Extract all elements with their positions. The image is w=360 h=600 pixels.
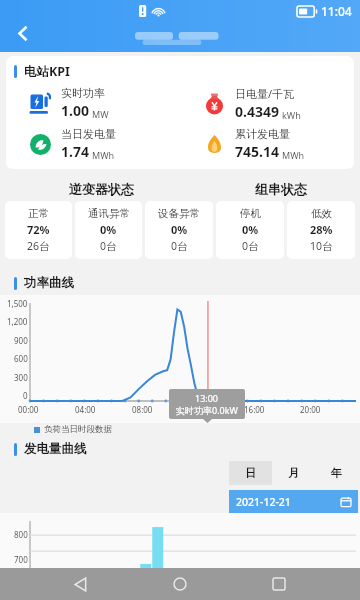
staticText: 1,500 bbox=[7, 298, 28, 309]
staticText: 年 bbox=[331, 466, 342, 480]
staticText: 16:00 bbox=[244, 404, 265, 415]
staticText: 10台 bbox=[310, 239, 333, 253]
staticText: 745.14 bbox=[235, 142, 279, 161]
button[interactable]: 停机 bbox=[216, 201, 284, 259]
staticText: 累计发电量 bbox=[235, 127, 290, 141]
button[interactable]: 累计发电量 bbox=[202, 127, 354, 161]
staticText: 实时功率 bbox=[61, 86, 105, 100]
staticText: 设备异常 bbox=[158, 207, 200, 220]
button[interactable]: Back bbox=[63, 568, 99, 600]
staticText: 负荷当日时段数据 bbox=[44, 424, 112, 435]
staticText: 800 bbox=[14, 529, 28, 540]
staticText: 0台 bbox=[100, 239, 117, 253]
staticText: 0% bbox=[242, 222, 259, 237]
staticText: 日 bbox=[245, 466, 256, 480]
staticText: 72% bbox=[27, 222, 50, 237]
staticText: 900 bbox=[14, 335, 28, 346]
staticText: 0% bbox=[100, 222, 117, 237]
staticText: 26台 bbox=[27, 239, 50, 253]
staticText: 0 bbox=[23, 390, 28, 401]
staticText: kWh bbox=[282, 109, 301, 121]
staticText: 实时功率0.0kW bbox=[176, 404, 238, 416]
staticText: 00:00 bbox=[18, 404, 39, 415]
staticText: 2021-12-21 bbox=[236, 495, 291, 509]
button[interactable]: 年 bbox=[315, 461, 358, 485]
button[interactable]: 日电量/千瓦 bbox=[202, 86, 354, 121]
button[interactable]: 设备异常 bbox=[145, 201, 213, 259]
staticText: 20:00 bbox=[300, 404, 321, 415]
staticText: 0.4349 bbox=[235, 102, 279, 121]
button[interactable]: Recent apps bbox=[261, 568, 297, 600]
staticText: 0台 bbox=[242, 239, 259, 253]
staticText: 11:04 bbox=[321, 3, 352, 19]
staticText: 组串状态 bbox=[255, 181, 307, 197]
staticText: 逆变器状态 bbox=[69, 181, 134, 197]
staticText: 正常 bbox=[28, 207, 49, 220]
staticText: 当日发电量 bbox=[61, 127, 116, 141]
staticText: MWh bbox=[92, 149, 115, 161]
button[interactable]: 实时功率 bbox=[28, 86, 180, 120]
button[interactable]: 通讯异常 bbox=[75, 201, 142, 259]
button[interactable]: 月 bbox=[272, 461, 315, 485]
staticText: 1,200 bbox=[7, 316, 28, 327]
staticText: 0% bbox=[171, 222, 188, 237]
button[interactable]: 正常 bbox=[5, 201, 72, 259]
staticText: 功率曲线 bbox=[24, 275, 74, 291]
staticText: 0台 bbox=[171, 239, 188, 253]
staticText: 700 bbox=[14, 554, 28, 565]
staticText: 300 bbox=[14, 372, 28, 383]
button[interactable]: Back bbox=[6, 16, 40, 50]
button[interactable]: 日 bbox=[229, 461, 272, 485]
staticText: 12:00 bbox=[188, 404, 209, 415]
staticText: 1.74 bbox=[61, 142, 89, 161]
staticText: 发电量曲线 bbox=[24, 441, 87, 457]
staticText: 日电量/千瓦 bbox=[235, 86, 295, 101]
button[interactable]: 2021-12-21 bbox=[229, 490, 358, 513]
button[interactable]: 低效 bbox=[287, 201, 355, 259]
staticText: 停机 bbox=[240, 207, 261, 220]
staticText: 13:00 bbox=[195, 392, 219, 404]
staticText: 600 bbox=[14, 353, 28, 364]
staticText: MW bbox=[92, 108, 109, 120]
staticText: 通讯异常 bbox=[88, 207, 130, 220]
staticText: 04:00 bbox=[75, 404, 96, 415]
staticText: MWh bbox=[282, 149, 305, 161]
staticText: 08:00 bbox=[132, 404, 153, 415]
staticText: 1.00 bbox=[61, 101, 89, 120]
staticText: 低效 bbox=[311, 207, 332, 220]
button[interactable]: Home bbox=[162, 568, 198, 600]
button[interactable]: 当日发电量 bbox=[28, 127, 180, 161]
staticText: 月 bbox=[288, 466, 299, 480]
staticText: 电站KPI bbox=[24, 63, 70, 80]
staticText: 28% bbox=[310, 222, 333, 237]
